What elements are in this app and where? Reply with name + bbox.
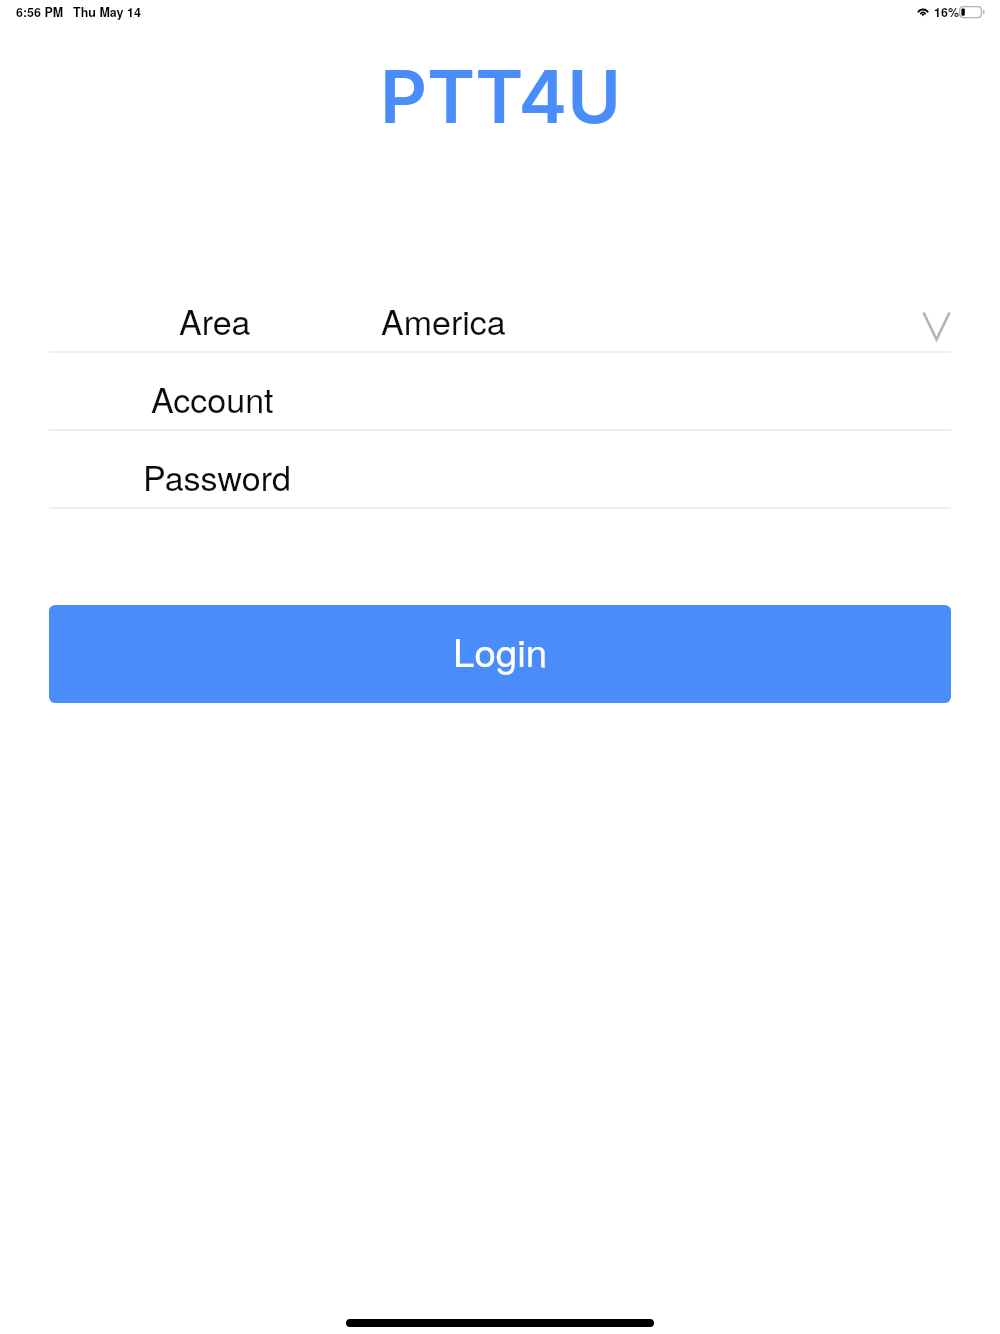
staticText: Password [143, 452, 291, 501]
button[interactable]: Area [0, 274, 1000, 352]
button[interactable]: Account [0, 352, 1000, 430]
button[interactable]: Login [49, 605, 951, 703]
staticText: PTT4U [380, 52, 621, 140]
button[interactable]: Password [0, 430, 1000, 508]
staticText: Account [151, 374, 274, 423]
staticText: 6:56 PM [16, 3, 64, 21]
staticText: Thu May 14 [73, 3, 141, 21]
staticText: 16% [934, 3, 960, 21]
staticText: Area [179, 296, 251, 345]
other: Battery 16 percent [959, 6, 986, 19]
staticText: Login [453, 623, 548, 678]
staticText: America [381, 296, 506, 345]
other: Wi-Fi connected [916, 5, 930, 16]
button[interactable]: Select area [922, 311, 951, 341]
